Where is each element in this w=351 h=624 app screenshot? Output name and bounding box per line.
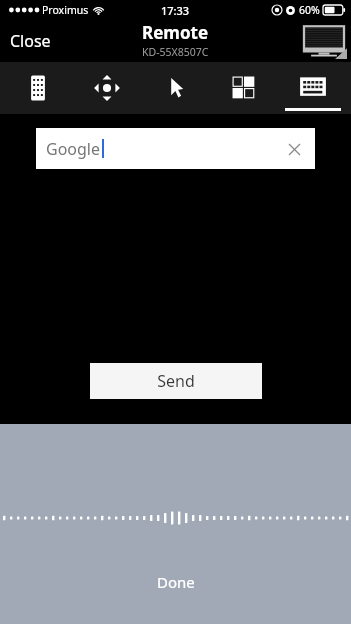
button[interactable]: Apps grid [213, 62, 275, 114]
staticText: Send [157, 370, 195, 392]
button[interactable]: Send [90, 363, 262, 399]
button[interactable]: Google [36, 128, 315, 169]
button[interactable]: Close [0, 26, 61, 56]
staticText: KD-55X8507C [142, 45, 209, 59]
button[interactable]: D-pad [76, 62, 138, 114]
staticText: Google [46, 138, 101, 160]
staticText: Remote [142, 21, 209, 44]
staticText: 17:33 [161, 3, 190, 18]
staticText: Proximus [42, 3, 89, 17]
staticText: Done [157, 572, 195, 592]
button[interactable]: Pointer [145, 62, 207, 114]
button[interactable]: Remote keypad [7, 62, 69, 114]
button[interactable]: Keyboard [282, 62, 344, 114]
staticText: 60% [299, 3, 320, 17]
button[interactable]: Done [139, 567, 213, 597]
button[interactable]: Clear text [283, 138, 305, 160]
staticText: Close [10, 30, 51, 52]
button[interactable]: TV preview [301, 23, 347, 59]
